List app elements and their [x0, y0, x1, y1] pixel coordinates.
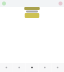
button[interactable]: Tab	[51, 63, 64, 72]
button[interactable]: Tab	[38, 63, 51, 72]
button[interactable]: Tab	[0, 63, 13, 72]
button[interactable]: Tab	[26, 63, 38, 72]
button[interactable]: Tab	[13, 63, 26, 72]
